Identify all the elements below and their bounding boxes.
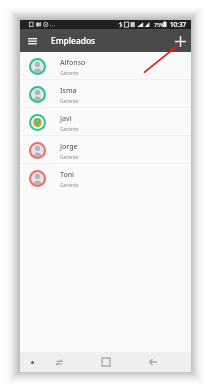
button[interactable]: Toni (20, 164, 191, 192)
staticText: Isma (60, 86, 77, 96)
staticText: Gerente (60, 98, 79, 105)
staticText: Jorge (60, 142, 78, 152)
staticText: Gerente (60, 126, 79, 133)
button[interactable]: Open navigation menu (24, 33, 40, 49)
button[interactable]: Isma (20, 80, 191, 108)
staticText: 75% (154, 21, 165, 28)
button[interactable]: Javi (20, 108, 191, 136)
staticText: Toni (60, 170, 74, 180)
staticText: Gerente (60, 70, 79, 77)
staticText: Gerente (60, 182, 79, 189)
button[interactable]: Back (146, 355, 160, 369)
button[interactable]: Alfonso (20, 52, 191, 80)
button[interactable]: Assistant (25, 355, 39, 369)
staticText: Empleados (51, 35, 96, 46)
staticText: Gerente (60, 154, 79, 161)
staticText: Javi (60, 114, 72, 124)
button[interactable]: Add employee (172, 33, 188, 49)
button[interactable]: Recent apps (99, 355, 113, 369)
staticText: Alfonso (60, 58, 86, 68)
staticText: 10:37 (170, 20, 187, 29)
button[interactable]: Jorge (20, 136, 191, 164)
button[interactable]: Switch keyboard (52, 355, 66, 369)
